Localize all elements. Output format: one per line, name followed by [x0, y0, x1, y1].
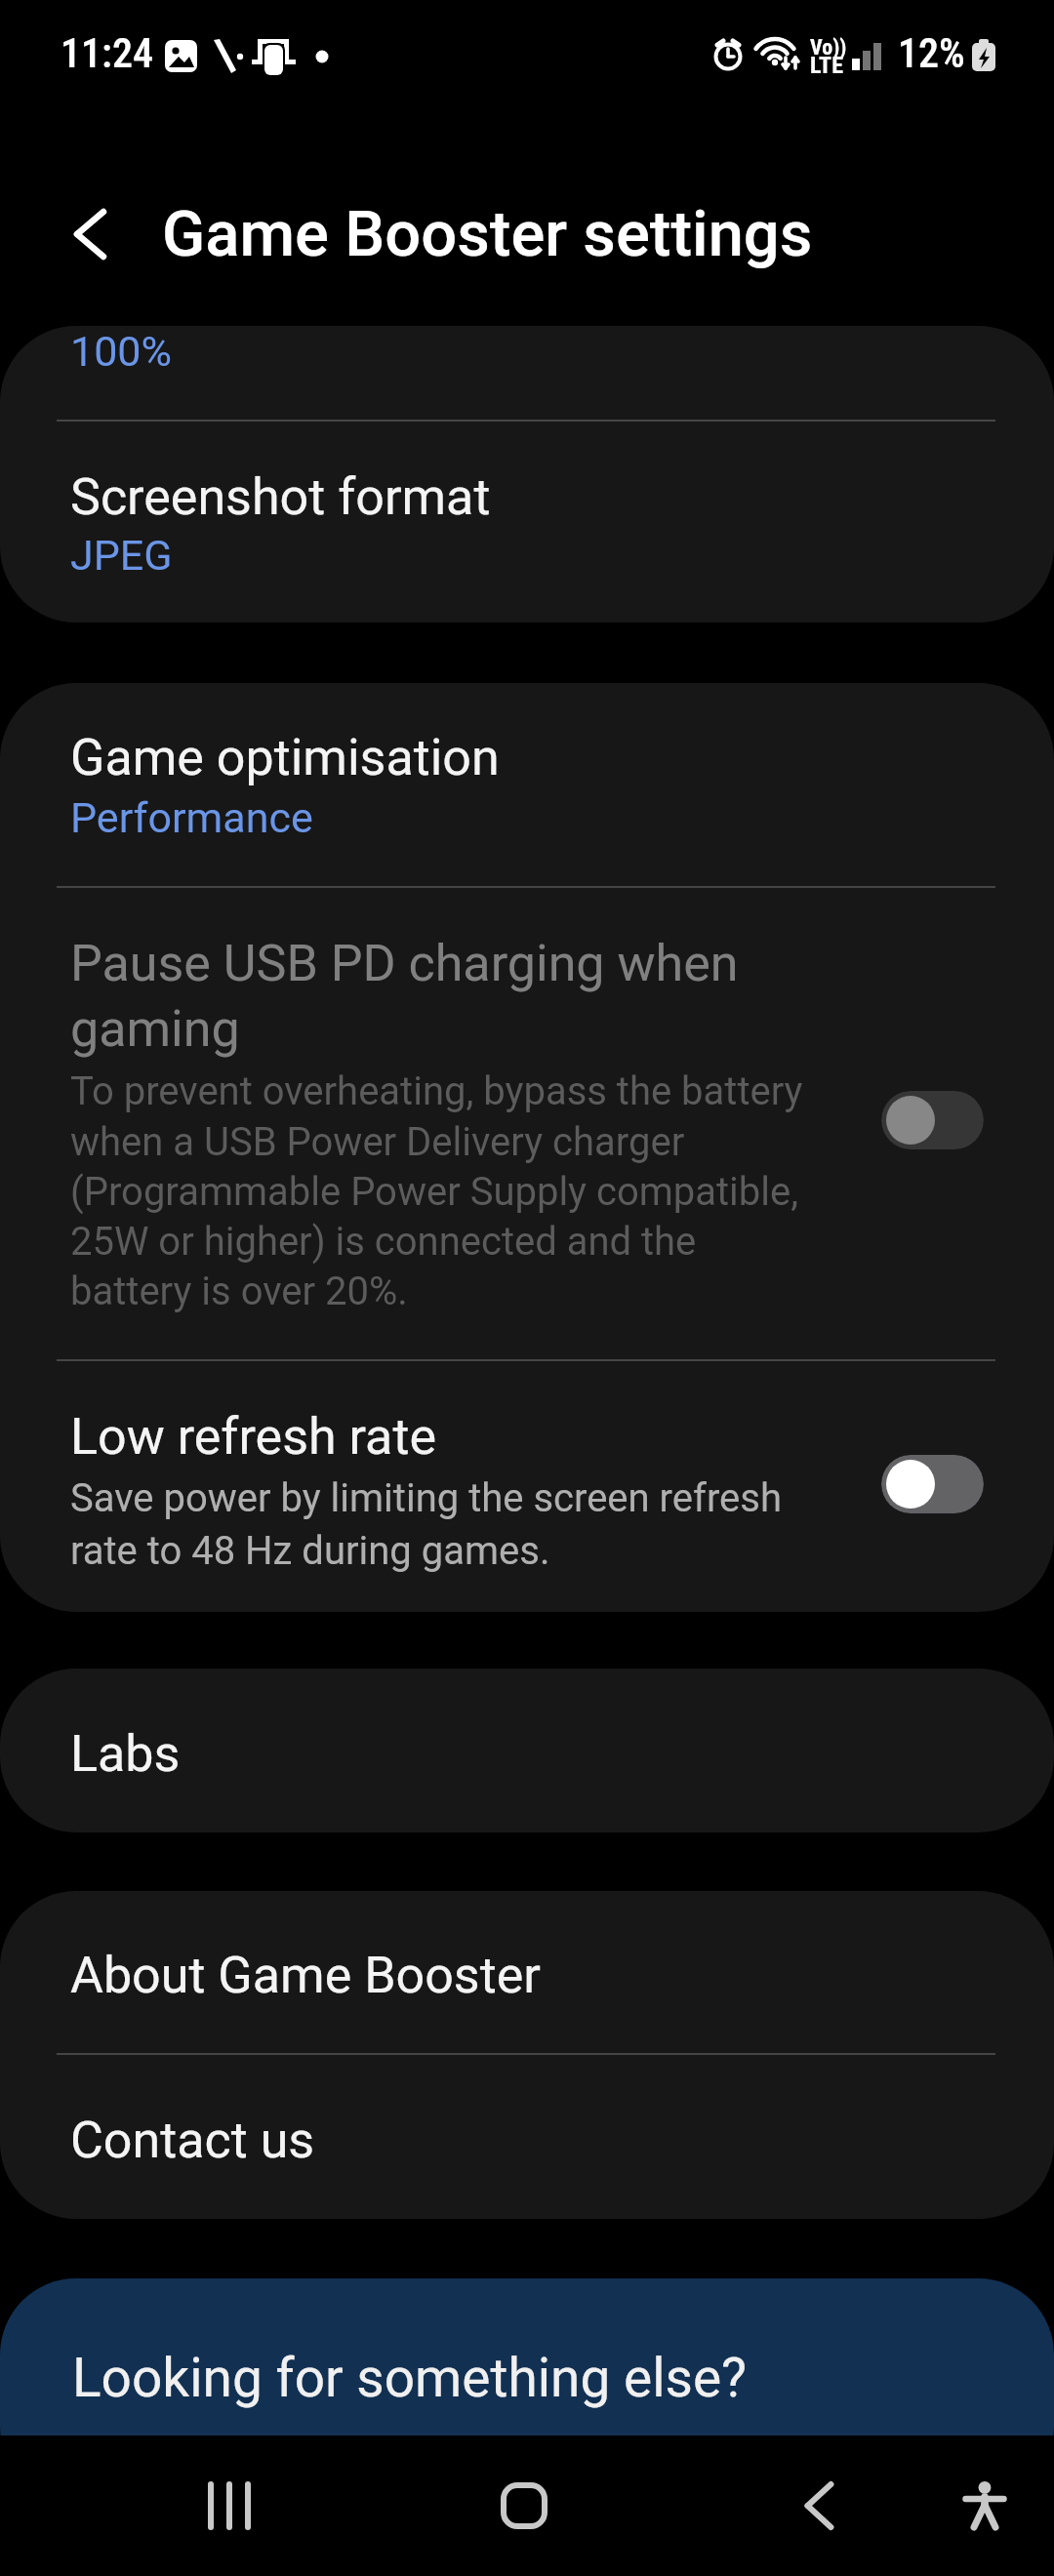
- button[interactable]: Screenshot format: [0, 422, 1054, 623]
- button[interactable]: Game optimisation: [0, 683, 1054, 886]
- staticText: Save power by limiting the screen refres…: [70, 1475, 818, 1574]
- staticText: Screenshot format: [70, 467, 491, 527]
- button[interactable]: Contact us: [0, 2055, 1054, 2219]
- staticText: Labs: [70, 1724, 181, 1784]
- staticText: Performance: [70, 793, 313, 842]
- button[interactable]: Toggle: [881, 1455, 984, 1513]
- button[interactable]: Back: [732, 2435, 908, 2576]
- staticText: JPEG: [70, 531, 173, 580]
- staticText: 11:24: [61, 29, 154, 77]
- button[interactable]: Labs: [0, 1669, 1054, 1832]
- button[interactable]: Navigate up: [47, 184, 135, 272]
- staticText: Game Booster settings: [162, 197, 813, 271]
- button[interactable]: Looking for something else?: [0, 2278, 1054, 2503]
- button[interactable]: Pause USB PD charging when gaming: [0, 888, 1054, 1358]
- staticText: Game optimisation: [70, 728, 500, 787]
- staticText: Vo)): [810, 35, 847, 60]
- staticText: Looking for something else?: [72, 2347, 748, 2409]
- staticText: Pause USB PD charging when gaming: [70, 934, 818, 1059]
- button[interactable]: 100%: [0, 326, 1054, 422]
- staticText: 12%: [898, 29, 965, 77]
- button[interactable]: Low refresh rate: [0, 1361, 1054, 1612]
- button[interactable]: Home: [436, 2435, 612, 2576]
- button[interactable]: Toggle: [881, 1091, 984, 1149]
- staticText: Low refresh rate: [70, 1407, 436, 1467]
- staticText: 100%: [70, 327, 172, 376]
- staticText: About Game Booster: [70, 1946, 541, 2005]
- staticText: Contact us: [70, 2111, 315, 2170]
- button[interactable]: About Game Booster: [0, 1891, 1054, 2053]
- button[interactable]: Recent apps: [142, 2435, 317, 2576]
- staticText: LTE: [810, 52, 843, 79]
- button[interactable]: Accessibility: [916, 2435, 1053, 2576]
- staticText: To prevent overheating, bypass the batte…: [70, 1068, 818, 1314]
